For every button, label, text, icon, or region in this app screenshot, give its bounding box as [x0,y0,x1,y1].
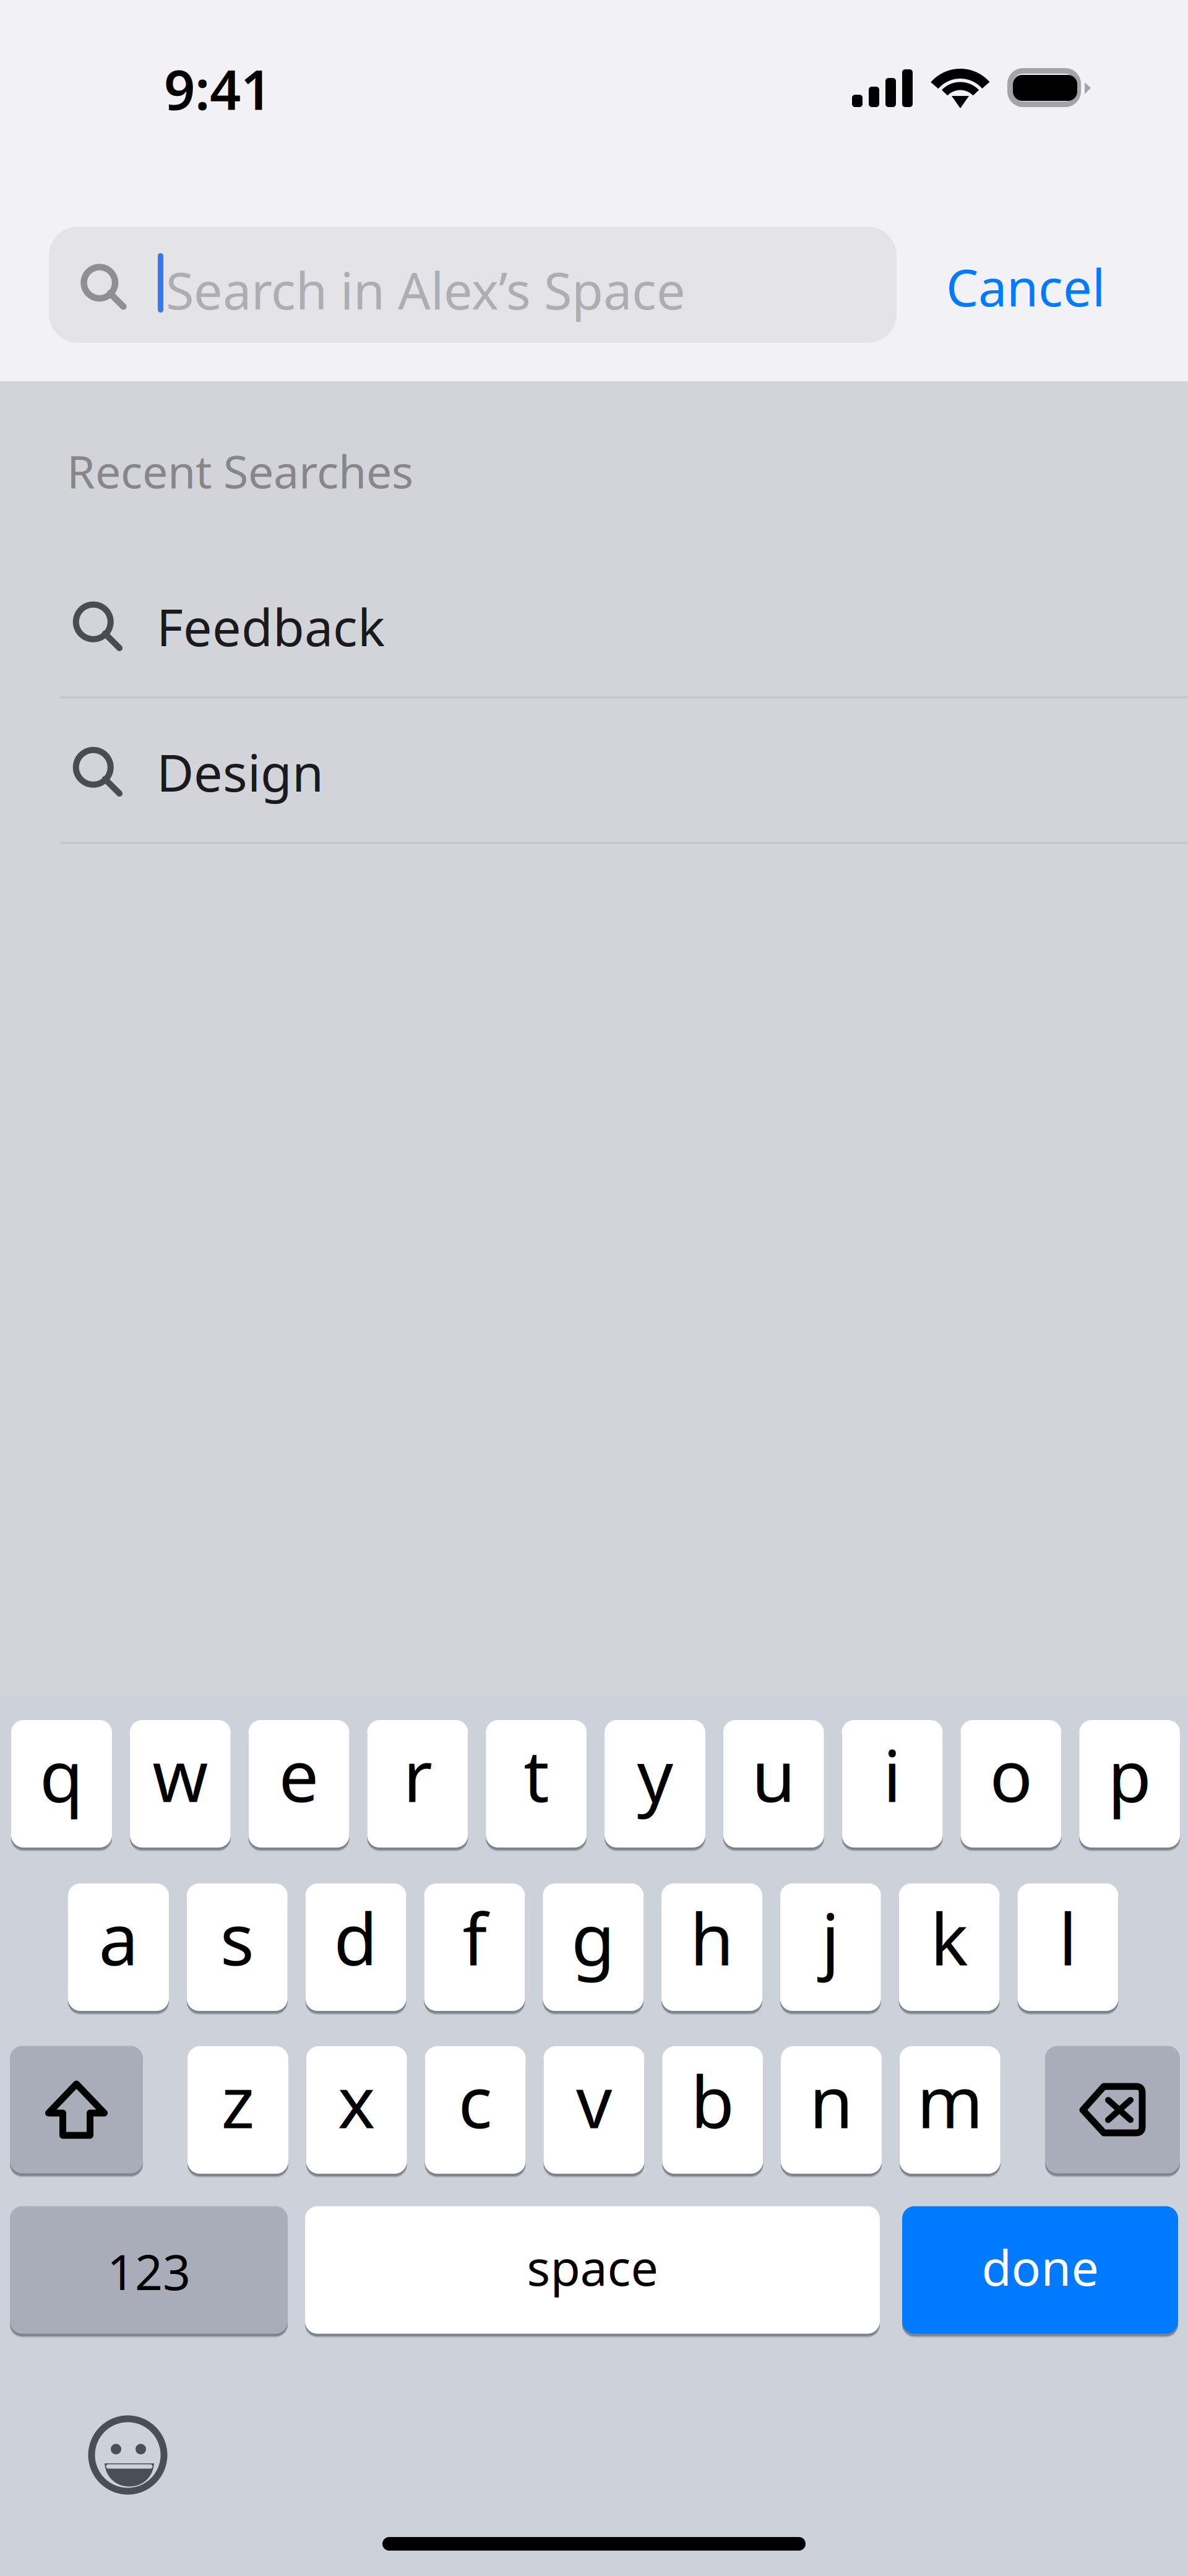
button[interactable]: a [68,1883,169,2015]
button[interactable]: r [367,1720,468,1851]
staticText: u [752,1727,796,1822]
button[interactable]: Search in Alex’s Space [49,227,897,343]
staticText: f [462,1891,487,1985]
button[interactable]: u [723,1720,824,1851]
staticText: w [152,1727,208,1822]
button[interactable]: v [544,2046,644,2177]
staticText: p [1108,1727,1152,1822]
staticText: l [1059,1891,1077,1985]
button[interactable]: Design [0,697,1188,842]
button[interactable]: s [187,1883,288,2015]
staticText: Cancel [946,253,1105,320]
staticText: Recent Searches [67,441,413,501]
staticText: s [220,1891,254,1985]
button[interactable]: y [605,1720,705,1851]
button[interactable]: e [248,1720,349,1851]
staticText: q [40,1727,84,1822]
button[interactable]: l [1017,1883,1118,2015]
staticText: r [403,1727,432,1822]
staticText: k [930,1891,968,1985]
staticText: c [458,2054,492,2148]
button[interactable]: n [781,2046,882,2177]
button[interactable]: q [11,1720,112,1851]
staticText: m [917,2054,983,2148]
button[interactable]: Feedback [0,551,1188,697]
button[interactable]: i [842,1720,943,1851]
staticText: i [883,1727,902,1822]
button[interactable]: space [305,2206,880,2337]
button[interactable]: o [961,1720,1061,1851]
staticText: Search in Alex’s Space [166,256,686,324]
staticText: 9:41 [164,53,272,125]
button[interactable]: Shift [10,2046,143,2177]
staticText: z [221,2054,255,2148]
button[interactable]: f [424,1883,525,2015]
staticText: j [821,1891,840,1985]
staticText: Feedback [157,592,385,660]
button[interactable]: w [130,1720,231,1851]
staticText: y [637,1727,673,1822]
button[interactable]: h [661,1883,762,2015]
staticText: done [982,2235,1099,2299]
button[interactable]: m [900,2046,1000,2177]
button[interactable]: d [305,1883,406,2015]
staticText: g [571,1891,615,1985]
staticText: n [809,2054,853,2148]
button[interactable]: g [543,1883,644,2015]
staticText: space [527,2235,658,2299]
staticText: Design [157,738,324,806]
staticText: d [334,1891,378,1985]
button[interactable]: Cancel [921,227,1125,343]
button[interactable]: k [899,1883,1000,2015]
button[interactable]: b [662,2046,763,2177]
staticText: 123 [107,2239,191,2304]
button[interactable]: p [1079,1720,1180,1851]
staticText: t [524,1727,549,1822]
staticText: h [690,1891,734,1985]
button[interactable]: done [902,2206,1178,2337]
button[interactable]: t [486,1720,587,1851]
staticText: a [99,1891,138,1985]
button[interactable]: z [187,2046,288,2177]
button[interactable]: Emoji keyboard [88,2416,173,2500]
staticText: x [338,2054,375,2148]
button[interactable]: Delete [1045,2046,1180,2177]
button[interactable]: c [425,2046,526,2177]
staticText: b [691,2054,735,2148]
button[interactable]: x [306,2046,407,2177]
staticText: o [990,1727,1032,1822]
staticText: e [279,1727,319,1822]
staticText: v [576,2054,612,2148]
button[interactable]: j [780,1883,881,2015]
button[interactable]: 123 [10,2206,288,2337]
